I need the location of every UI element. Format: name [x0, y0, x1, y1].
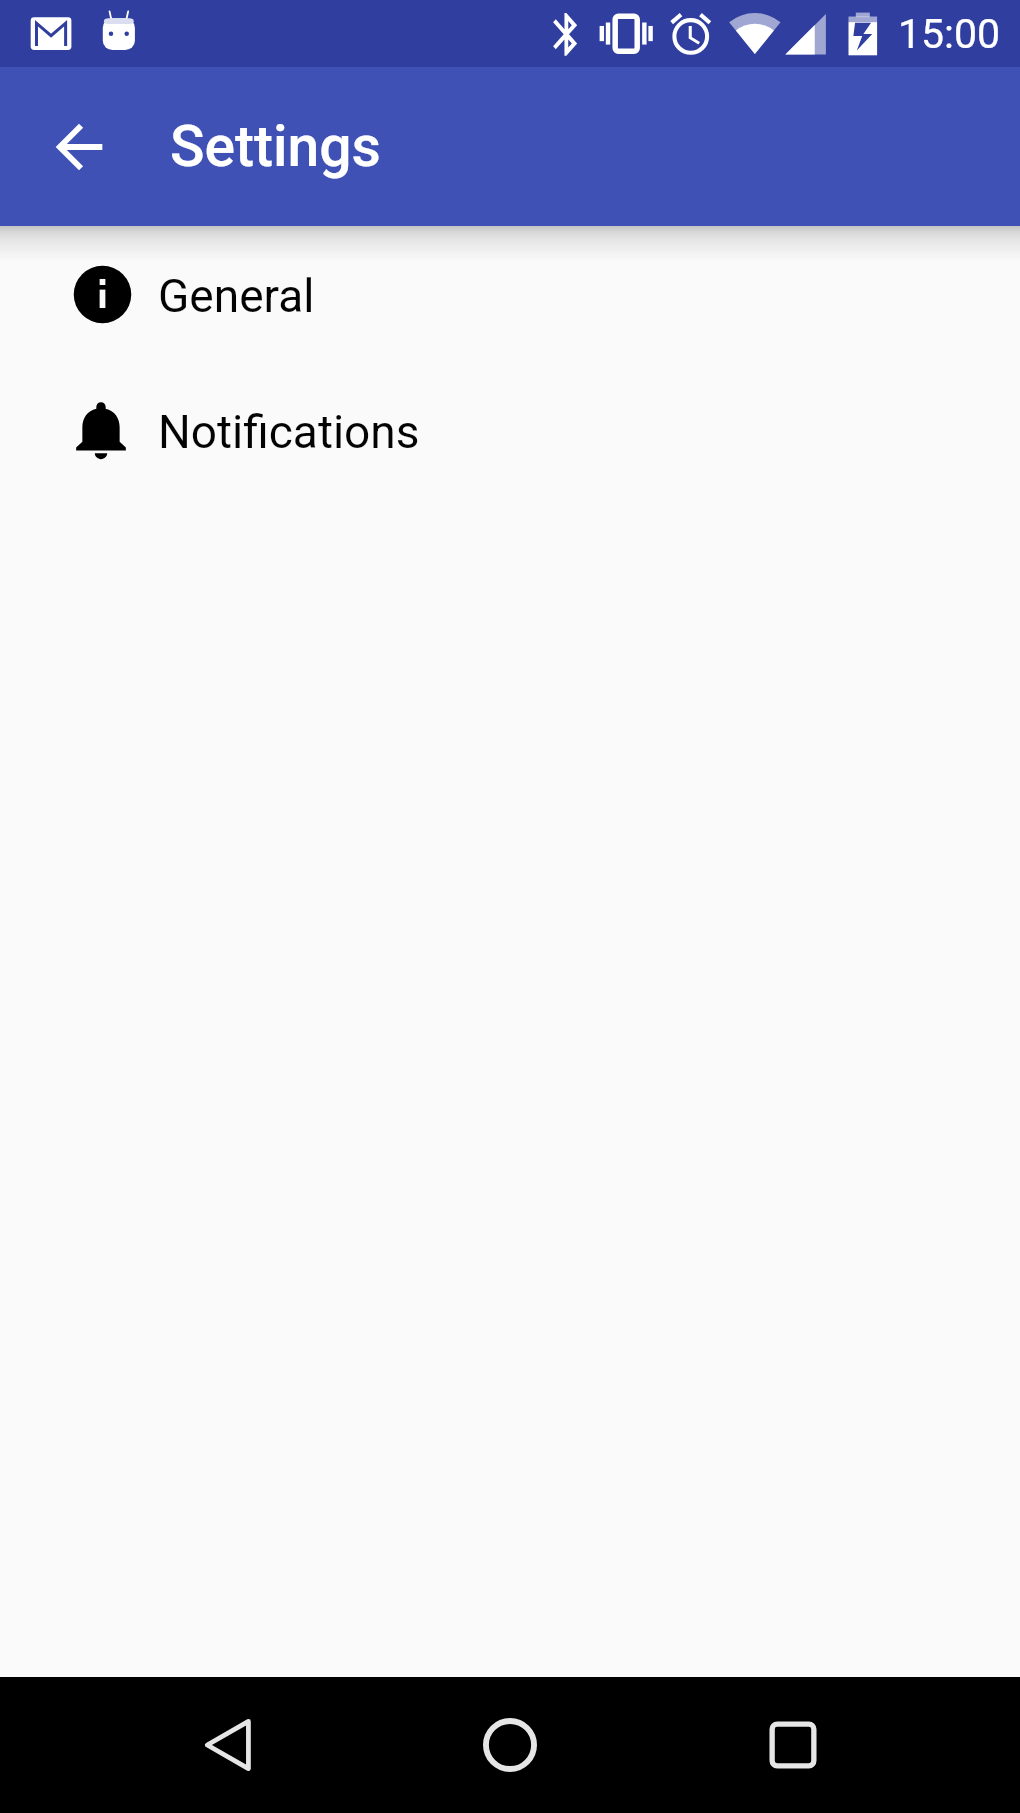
staticText: General [158, 269, 315, 323]
button[interactable]: Notifications [0, 374, 1020, 486]
button[interactable]: Back [159, 1677, 295, 1813]
button[interactable]: General [0, 238, 1020, 350]
staticText: 15:00 [898, 10, 1001, 58]
staticText: Settings [170, 113, 381, 180]
button[interactable]: Navigate up [22, 90, 136, 204]
button[interactable]: Home [442, 1677, 578, 1813]
button[interactable]: Recent apps [725, 1677, 861, 1813]
staticText: Notifications [158, 405, 420, 459]
